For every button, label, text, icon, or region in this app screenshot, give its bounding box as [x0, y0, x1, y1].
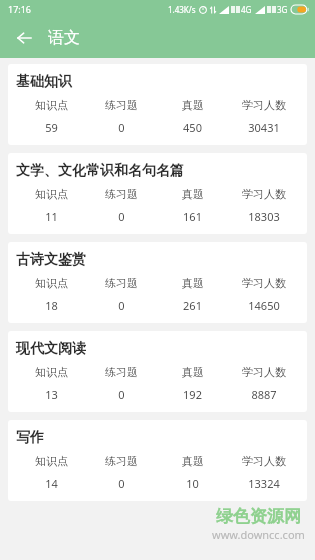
staticText: 练习题 — [105, 365, 138, 379]
staticText: 知识点 — [35, 454, 68, 468]
staticText: 8887 — [251, 387, 277, 402]
button[interactable]: 文学、文化常识和名句名篇 — [8, 153, 307, 234]
staticText: 真题 — [182, 187, 204, 201]
staticText: 1.43K/s — [168, 4, 196, 15]
staticText: 0 — [118, 298, 125, 313]
staticText: 基础知识 — [16, 73, 72, 91]
staticText: 现代文阅读 — [16, 340, 86, 358]
button[interactable]: 基础知识 — [8, 64, 307, 145]
staticText: 450 — [183, 120, 202, 135]
staticText: 0 — [118, 209, 125, 224]
staticText: 学习人数 — [242, 98, 286, 112]
staticText: www.downcc.com — [212, 527, 305, 542]
staticText: 古诗文鉴赏 — [16, 251, 86, 269]
staticText: 学习人数 — [242, 454, 286, 468]
staticText: 真题 — [182, 454, 204, 468]
staticText: 绿色资源网 — [216, 506, 301, 527]
button[interactable]: 现代文阅读 — [8, 331, 307, 412]
staticText: 练习题 — [105, 276, 138, 290]
staticText: 真题 — [182, 365, 204, 379]
staticText: 192 — [183, 387, 202, 402]
staticText: 知识点 — [35, 276, 68, 290]
staticText: 练习题 — [105, 187, 138, 201]
staticText: 文学、文化常识和名句名篇 — [16, 162, 184, 180]
staticText: 学习人数 — [242, 187, 286, 201]
staticText: 0 — [118, 387, 125, 402]
staticText: 13324 — [248, 476, 280, 491]
staticText: 18303 — [248, 209, 280, 224]
staticText: 14650 — [248, 298, 280, 313]
staticText: 11 — [45, 209, 58, 224]
staticText: 学习人数 — [242, 276, 286, 290]
button[interactable]: 古诗文鉴赏 — [8, 242, 307, 323]
button[interactable]: Back — [8, 22, 40, 54]
staticText: 语文 — [48, 28, 80, 48]
staticText: 知识点 — [35, 365, 68, 379]
staticText: 真题 — [182, 276, 204, 290]
staticText: 练习题 — [105, 98, 138, 112]
staticText: 练习题 — [105, 454, 138, 468]
staticText: 10 — [186, 476, 199, 491]
staticText: 0 — [118, 120, 125, 135]
staticText: 161 — [183, 209, 202, 224]
staticText: 13 — [45, 387, 58, 402]
staticText: 0 — [118, 476, 125, 491]
staticText: 3G — [277, 4, 288, 15]
staticText: 261 — [183, 298, 202, 313]
staticText: 30431 — [248, 120, 280, 135]
staticText: 18 — [45, 298, 58, 313]
staticText: 14 — [45, 476, 58, 491]
staticText: 真题 — [182, 98, 204, 112]
staticText: 知识点 — [35, 98, 68, 112]
staticText: 学习人数 — [242, 365, 286, 379]
staticText: 写作 — [16, 429, 44, 447]
staticText: 59 — [45, 120, 58, 135]
staticText: 4G — [241, 4, 252, 15]
button[interactable]: 写作 — [8, 420, 307, 501]
staticText: 知识点 — [35, 187, 68, 201]
staticText: 17:16 — [8, 3, 32, 15]
